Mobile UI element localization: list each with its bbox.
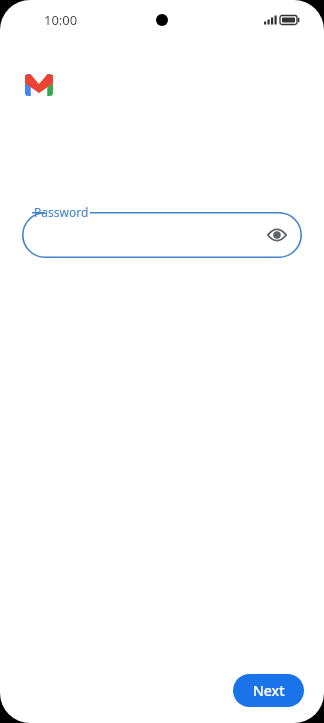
staticText: Password	[34, 204, 89, 220]
button[interactable]: Show password	[260, 218, 294, 252]
button[interactable]: Password	[22, 212, 302, 258]
button[interactable]: Next	[233, 674, 304, 707]
staticText: Next	[253, 681, 285, 700]
staticText: 10:00	[44, 11, 78, 29]
